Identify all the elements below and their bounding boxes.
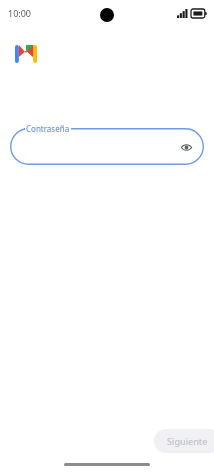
button[interactable]: Contraseña xyxy=(10,128,204,165)
staticText: 10:00 xyxy=(8,7,32,19)
button[interactable]: Siguiente xyxy=(154,429,214,453)
button[interactable]: Mostrar contraseña xyxy=(177,138,195,156)
staticText: Contraseña xyxy=(26,123,70,134)
staticText: Siguiente xyxy=(167,435,208,447)
